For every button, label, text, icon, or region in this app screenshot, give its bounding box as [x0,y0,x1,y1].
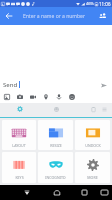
button[interactable]: Switch keyboard [98,185,111,200]
button[interactable]: MORE [75,152,110,183]
button[interactable]: Emoji [65,91,78,103]
button[interactable]: Themes [14,103,26,115]
staticText: KEYS [15,175,24,180]
button[interactable]: Location [39,91,52,103]
button[interactable]: Hide keyboard [20,185,33,200]
staticText: 46% [86,1,94,6]
button[interactable]: LAYOUT [2,120,36,150]
button[interactable]: UNDOCK [75,120,110,150]
button[interactable]: Microphone [52,91,65,103]
button[interactable]: More options [98,103,110,115]
button[interactable]: Clipboard [87,103,99,115]
button[interactable]: RESIZE [38,120,73,150]
staticText: Send [3,81,18,89]
button[interactable]: Gallery [0,91,13,103]
staticText: MORE [87,175,98,180]
staticText: INCOGNITO [45,175,66,180]
button[interactable]: Add contact [96,9,110,23]
button[interactable]: Send message [98,79,110,91]
button[interactable]: Camera [13,91,26,103]
button[interactable]: KEYS [2,152,36,183]
button[interactable]: Sticker [50,103,62,115]
button[interactable]: Video [26,91,39,103]
button[interactable]: Home [50,185,63,200]
staticText: UNDOCK [85,143,101,148]
button[interactable]: Recent apps [78,185,91,200]
staticText: RESIZE [50,143,62,148]
staticText: 11:06 [99,1,111,7]
staticText: Enter a name or a number [23,13,85,20]
staticText: LAYOUT [12,143,26,148]
button[interactable]: Back [2,9,16,23]
button[interactable]: INCOGNITO [38,152,73,183]
